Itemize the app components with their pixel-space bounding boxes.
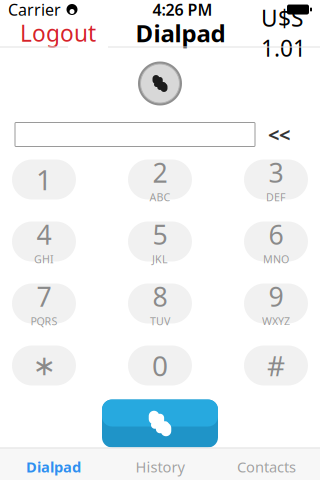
button[interactable]: 9 bbox=[244, 283, 308, 323]
button[interactable]: 4 bbox=[12, 221, 76, 261]
staticText: JKL bbox=[152, 252, 168, 266]
staticText: Carrier bbox=[8, 0, 61, 20]
button[interactable]: U$S 1.01 bbox=[255, 0, 312, 67]
staticText: WXYZ bbox=[262, 314, 290, 328]
button[interactable]: History bbox=[107, 448, 213, 480]
staticText: 7 bbox=[36, 279, 51, 314]
button[interactable]: 8 bbox=[128, 283, 192, 323]
staticText: 3 bbox=[268, 155, 283, 190]
staticText: 8 bbox=[152, 279, 167, 314]
staticText: U$S 1.01 bbox=[261, 3, 306, 63]
button[interactable]: Phone bbox=[136, 59, 184, 107]
staticText: Dialpad bbox=[26, 457, 81, 476]
staticText: << bbox=[268, 121, 290, 148]
staticText: Dialpad bbox=[135, 17, 225, 49]
button[interactable]: 7 bbox=[12, 283, 76, 323]
button[interactable]: Logout bbox=[10, 14, 106, 52]
button[interactable]: Call bbox=[102, 399, 218, 447]
button[interactable]: Backspace bbox=[255, 121, 303, 147]
button[interactable]: 5 bbox=[128, 221, 192, 261]
staticText: 5 bbox=[152, 217, 167, 252]
staticText: 4 bbox=[36, 217, 51, 252]
staticText: Logout bbox=[20, 18, 96, 48]
button[interactable]: 3 bbox=[244, 159, 308, 199]
staticText: TUV bbox=[150, 314, 170, 328]
button[interactable]: ∗ bbox=[12, 345, 76, 385]
button[interactable]: Contacts bbox=[213, 448, 320, 480]
staticText: ∗ bbox=[32, 350, 55, 381]
staticText: ABC bbox=[149, 190, 170, 204]
staticText: 2 bbox=[152, 155, 167, 190]
staticText: 0 bbox=[152, 347, 168, 384]
button[interactable]: # bbox=[244, 345, 308, 385]
button[interactable]: 2 bbox=[128, 159, 192, 199]
staticText: # bbox=[267, 347, 285, 384]
staticText: 9 bbox=[268, 279, 283, 314]
button[interactable]: 0 bbox=[128, 345, 192, 385]
staticText: History bbox=[135, 457, 184, 476]
staticText: 4:26 PM bbox=[152, 0, 212, 20]
button[interactable]: 6 bbox=[244, 221, 308, 261]
button[interactable]: Dialpad bbox=[0, 448, 107, 480]
staticText: PQRS bbox=[30, 314, 57, 328]
staticText: DEF bbox=[266, 190, 286, 204]
staticText: GHI bbox=[34, 252, 54, 266]
button[interactable]: 1 bbox=[12, 159, 76, 199]
staticText: 6 bbox=[268, 217, 283, 252]
staticText: MNO bbox=[263, 252, 289, 266]
staticText: Contacts bbox=[237, 457, 296, 476]
staticText: 1 bbox=[36, 161, 52, 198]
